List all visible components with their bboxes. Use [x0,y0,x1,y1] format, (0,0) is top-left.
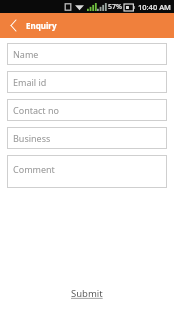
staticText: 10:40 AM [138,2,171,12]
button[interactable]: Name [7,43,167,65]
button[interactable]: Contact no [7,99,167,121]
button[interactable]: Comment [7,155,167,188]
button[interactable]: Business [7,127,167,149]
staticText: Name [13,48,39,60]
staticText: Contact no [13,104,59,116]
button[interactable]: Back [0,13,26,38]
staticText: Enquiry [26,20,57,31]
staticText: Business [13,132,51,144]
button[interactable]: Submit [61,283,113,304]
staticText: Submit [71,287,103,300]
staticText: Comment [13,163,55,175]
button[interactable]: Email id [7,71,167,93]
staticText: Email id [13,76,47,88]
staticText: 57% [108,2,122,12]
